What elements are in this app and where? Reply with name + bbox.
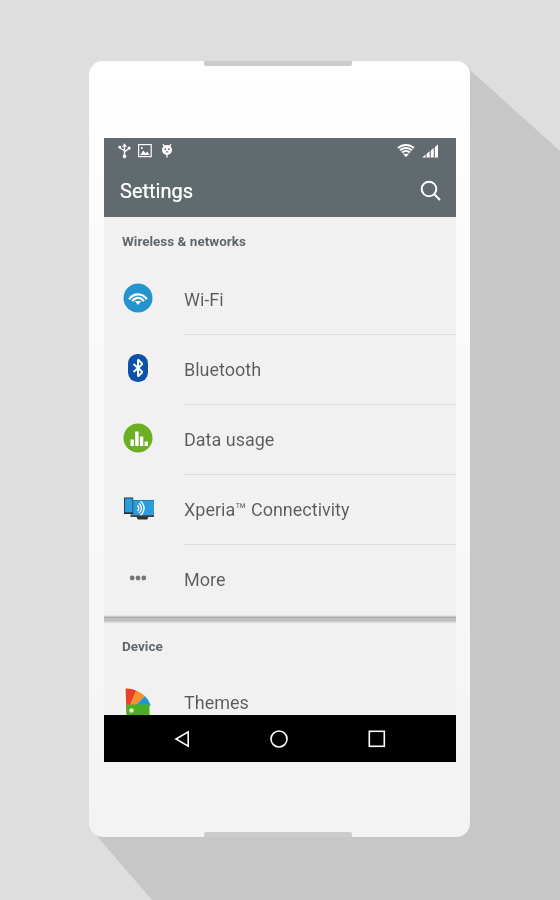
button[interactable]: Search [410, 171, 454, 215]
button[interactable]: More [104, 545, 456, 615]
button[interactable]: Data usage [104, 405, 456, 475]
button[interactable]: Xperia™ Connectivity [104, 475, 456, 545]
staticText: Settings [120, 179, 194, 202]
button[interactable]: Wi-Fi [104, 265, 456, 335]
staticText: Device [122, 638, 163, 654]
button[interactable]: Themes [104, 668, 456, 715]
staticText: More [184, 569, 226, 590]
staticText: Themes [184, 692, 249, 713]
button[interactable]: Home [251, 715, 307, 762]
staticText: Bluetooth [184, 359, 262, 380]
button[interactable]: Bluetooth [104, 335, 456, 405]
staticText: Data usage [184, 429, 275, 450]
staticText: Wireless & networks [122, 233, 246, 249]
staticText: Xperia™ Connectivity [184, 499, 350, 520]
staticText: Wi-Fi [184, 289, 224, 310]
button[interactable]: Back [155, 715, 211, 762]
button[interactable]: Recents [349, 715, 405, 762]
